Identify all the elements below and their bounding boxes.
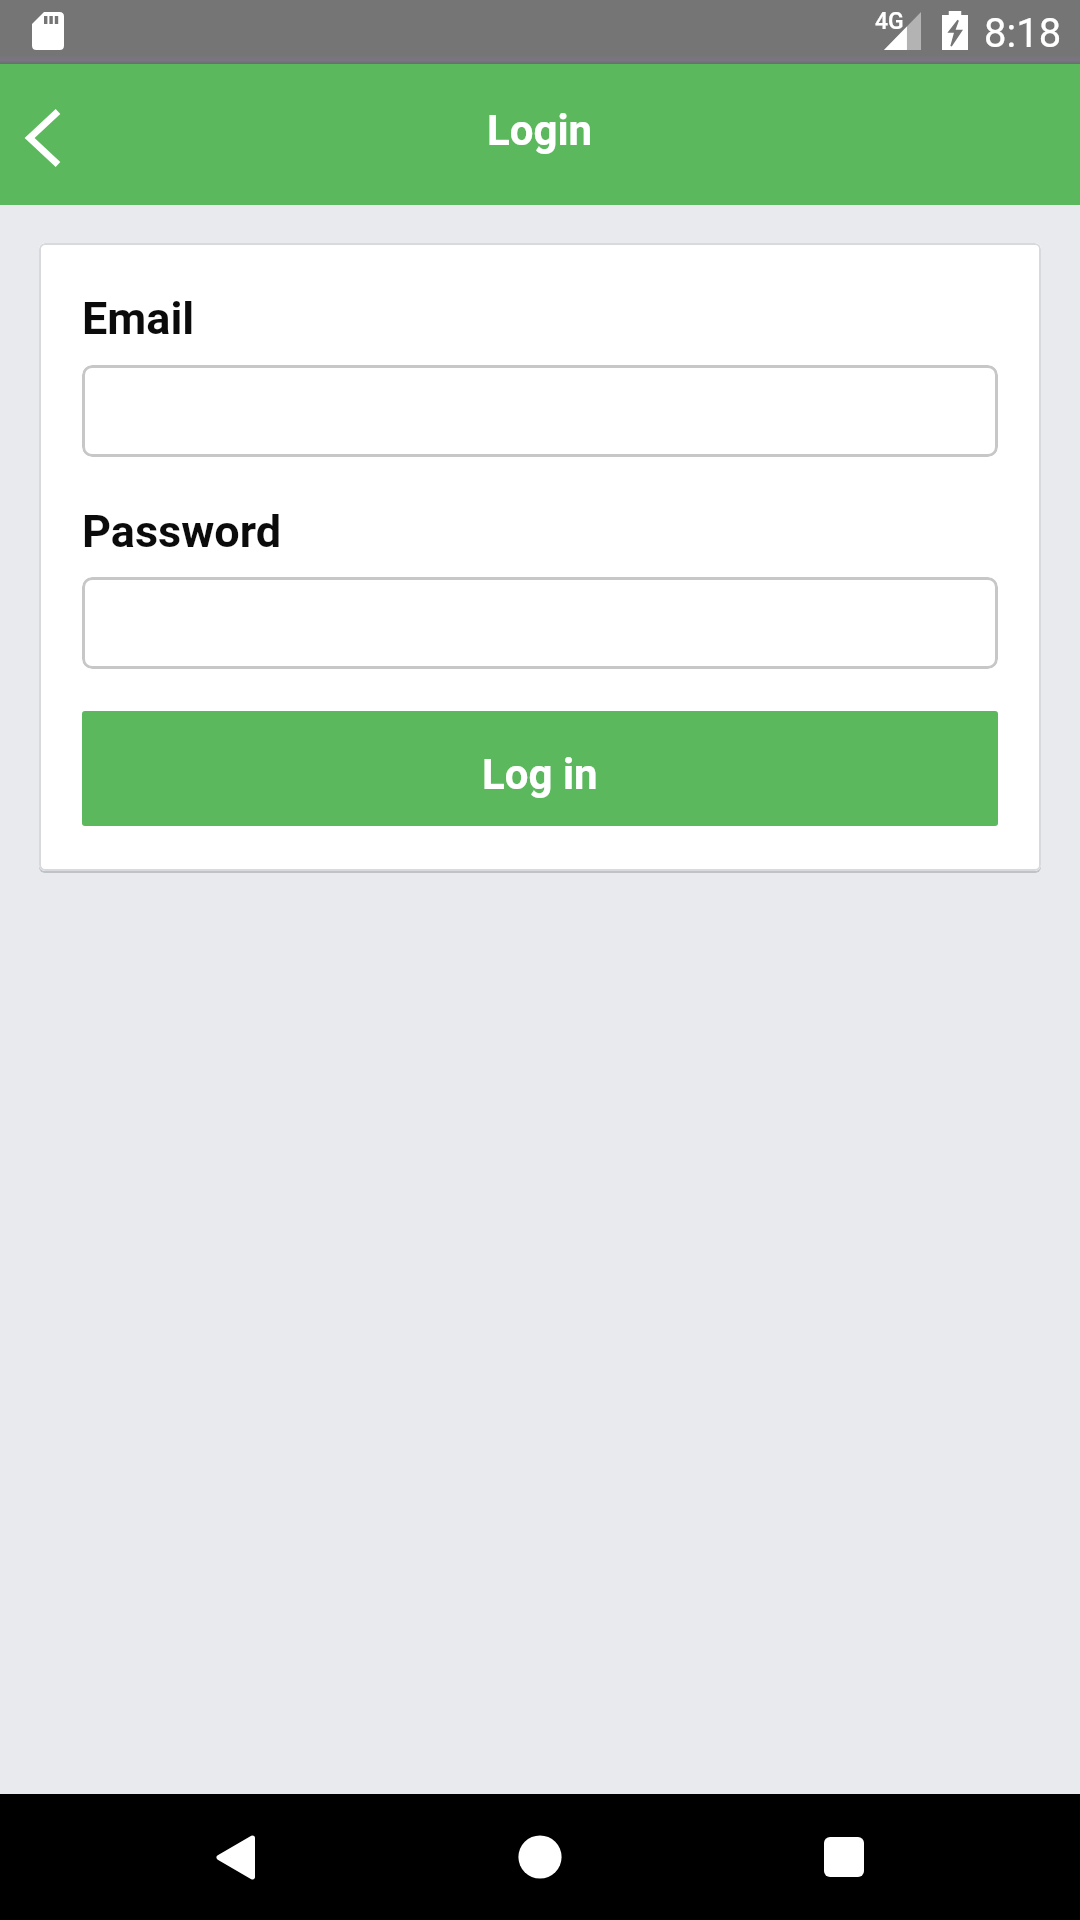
staticText: Email [82, 292, 195, 345]
staticText: 4G [875, 8, 904, 35]
button[interactable] [82, 577, 998, 669]
button[interactable]: Log in [82, 711, 998, 826]
button[interactable]: Back [0, 64, 88, 205]
button[interactable]: Home [477, 1794, 603, 1920]
staticText: Login [487, 106, 593, 155]
button[interactable]: Recent apps [781, 1794, 907, 1920]
staticText: Password [82, 505, 282, 558]
button[interactable]: Back [173, 1794, 299, 1920]
button[interactable] [82, 365, 998, 457]
staticText: 8:18 [984, 10, 1062, 57]
staticText: Log in [482, 750, 598, 799]
